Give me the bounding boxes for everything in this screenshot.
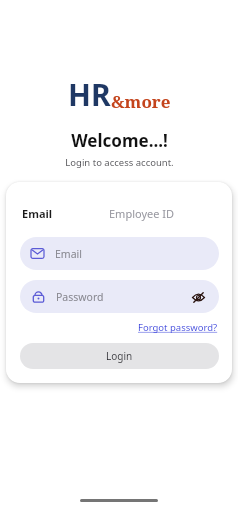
button[interactable]: Forgot password? — [137, 320, 219, 335]
staticText: Employee ID — [109, 206, 175, 221]
staticText: Email — [55, 247, 82, 261]
button[interactable]: Login — [20, 343, 219, 369]
button[interactable]: Employee ID — [107, 204, 177, 223]
staticText: Forgot password? — [138, 321, 218, 334]
button[interactable]: Email — [20, 237, 219, 270]
staticText: Welcome...! — [71, 129, 168, 152]
staticText: Email — [22, 206, 53, 221]
button[interactable]: Email — [20, 204, 55, 223]
button[interactable]: Show password — [189, 288, 207, 306]
staticText: Login to access account. — [65, 156, 174, 169]
staticText: HR — [68, 74, 111, 115]
staticText: &more — [111, 90, 171, 113]
button[interactable]: Password — [20, 280, 219, 313]
staticText: Login — [106, 349, 133, 363]
staticText: Password — [56, 290, 104, 304]
